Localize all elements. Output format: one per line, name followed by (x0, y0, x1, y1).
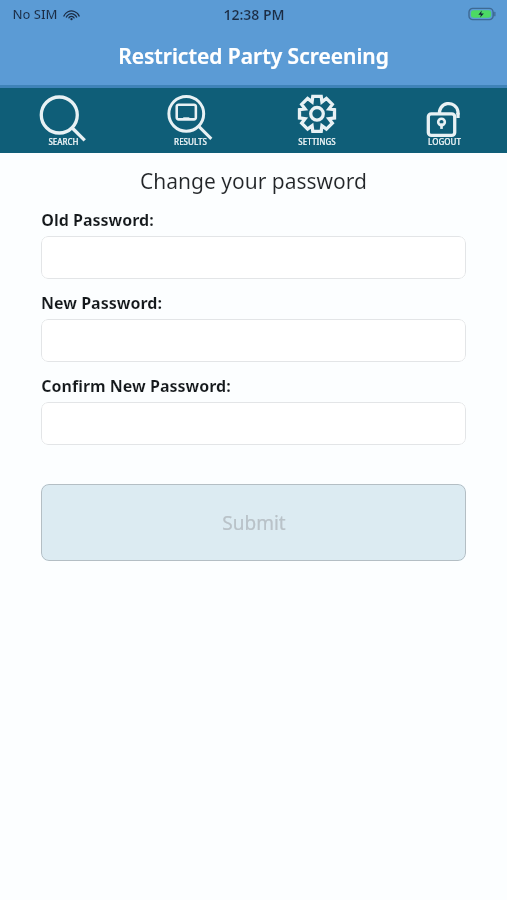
staticText: SEARCH (48, 136, 79, 147)
staticText: 12:38 PM (223, 5, 285, 24)
staticText: Restricted Party Screening (118, 42, 389, 71)
staticText: No SIM (12, 5, 58, 23)
button[interactable] (41, 402, 466, 445)
button[interactable]: SETTINGS (253, 88, 380, 153)
staticText: Confirm New Password: (41, 375, 231, 397)
staticText: SETTINGS (298, 136, 336, 147)
button[interactable]: RESULTS (126, 88, 253, 153)
button[interactable]: Submit (41, 484, 466, 561)
staticText: LOGOUT (428, 136, 461, 147)
staticText: Change your password (140, 167, 367, 196)
staticText: Submit (222, 510, 286, 536)
button[interactable]: SEARCH (0, 88, 126, 153)
button[interactable] (41, 236, 466, 279)
button[interactable] (41, 319, 466, 362)
staticText: RESULTS (174, 136, 207, 147)
button[interactable]: LOGOUT (380, 88, 507, 153)
staticText: Old Password: (41, 209, 154, 231)
staticText: New Password: (41, 292, 162, 314)
